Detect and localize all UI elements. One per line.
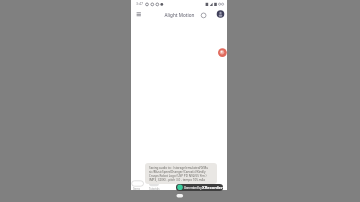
staticText: 3:47 (136, 1, 144, 6)
staticText: Generated by (184, 186, 202, 190)
staticText: XRecorder (202, 185, 223, 190)
staticText: Saving audio to : /storage/emulated/0/Mu… (149, 166, 209, 182)
staticText: Items (133, 187, 140, 191)
button[interactable]: Alight Motion (159, 12, 200, 18)
button[interactable] (216, 10, 225, 19)
staticText: Tutorials (149, 187, 160, 191)
button[interactable]: Generated by (176, 184, 223, 191)
button[interactable] (218, 48, 227, 57)
button[interactable] (134, 10, 143, 19)
